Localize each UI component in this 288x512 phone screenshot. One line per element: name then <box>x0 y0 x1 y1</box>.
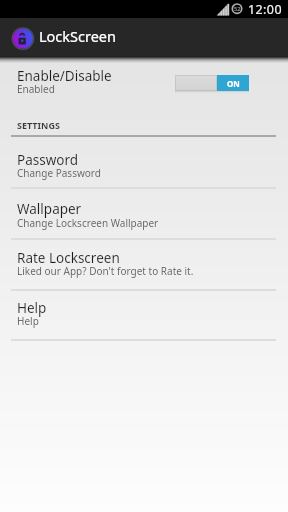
button[interactable]: Password <box>0 137 288 188</box>
button[interactable]: Rate Lockscreen <box>0 239 288 290</box>
staticText: Change Password <box>17 166 101 180</box>
staticText: 12:00 <box>248 1 282 18</box>
staticText: Change Lockscreen Wallpaper <box>17 216 159 230</box>
button[interactable]: Wallpaper <box>0 188 288 239</box>
staticText: Help <box>17 314 39 328</box>
staticText: 52 <box>234 5 241 12</box>
staticText: Enable/Disable <box>17 67 112 85</box>
staticText: LockScreen <box>39 26 117 46</box>
staticText: Rate Lockscreen <box>17 249 120 267</box>
staticText: Liked our App? Don't forget to Rate it. <box>17 264 194 278</box>
staticText: SETTINGS <box>17 119 60 131</box>
staticText: Password <box>17 151 79 169</box>
staticText: Enabled <box>17 82 55 96</box>
button[interactable]: Help <box>0 290 288 341</box>
staticText: Wallpaper <box>17 200 82 218</box>
staticText: ON <box>227 78 240 89</box>
button[interactable]: Enable/Disable <box>0 62 288 108</box>
staticText: Help <box>17 299 47 317</box>
